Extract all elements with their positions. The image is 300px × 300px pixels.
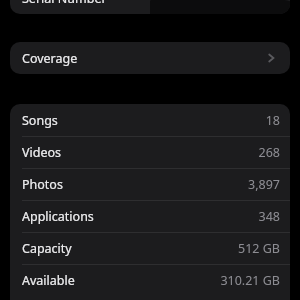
button[interactable]: Photos (10, 168, 290, 200)
staticText: 512 GB (238, 240, 280, 257)
staticText: Serial Number (22, 0, 107, 7)
staticText: Photos (22, 176, 248, 193)
other: Coverage details (264, 50, 280, 66)
button[interactable]: Applications (10, 200, 290, 232)
staticText: Applications (22, 208, 258, 225)
staticText: Available (22, 272, 220, 289)
button[interactable]: Songs (10, 104, 290, 136)
button[interactable]: Capacity (10, 232, 290, 264)
button[interactable]: Coverage (10, 42, 290, 74)
staticText: 348 (258, 208, 280, 225)
staticText: Songs (22, 112, 265, 129)
staticText: 268 (258, 144, 280, 161)
button[interactable]: Videos (10, 136, 290, 168)
staticText: 310.21 GB (220, 272, 280, 289)
staticText: Coverage (22, 50, 264, 67)
staticText: Videos (22, 144, 258, 161)
button[interactable]: Serial Number (10, 0, 290, 14)
staticText: 18 (265, 112, 280, 129)
staticText: 3,897 (248, 176, 280, 193)
button[interactable]: Available (10, 264, 290, 296)
staticText: Capacity (22, 240, 238, 257)
